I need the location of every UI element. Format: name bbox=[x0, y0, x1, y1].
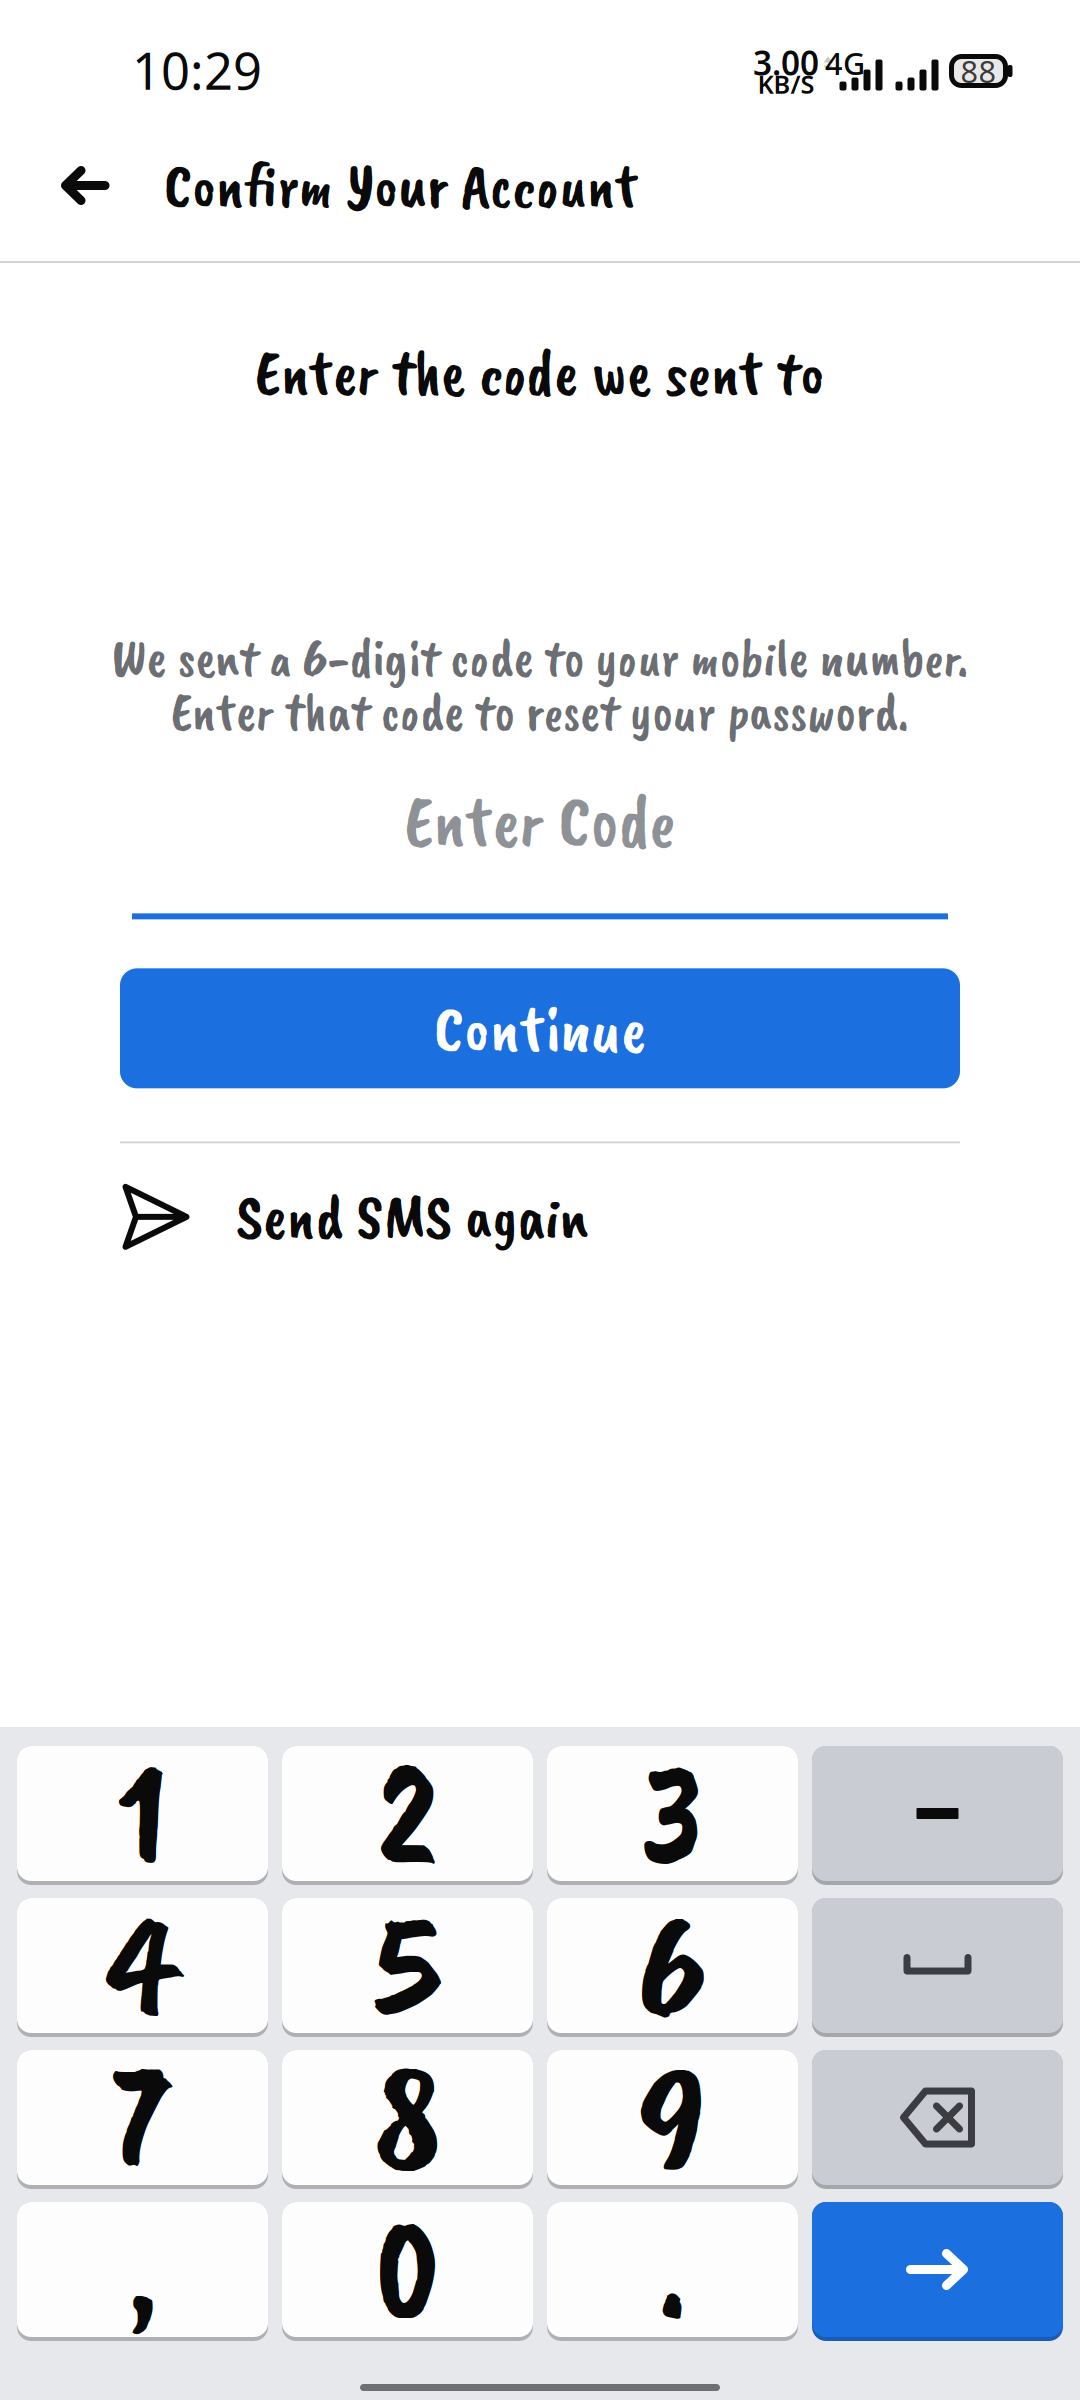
staticText: Enter Code bbox=[404, 776, 675, 866]
button[interactable]: Backspace bbox=[812, 2050, 1063, 2189]
staticText: 4 bbox=[109, 1873, 176, 2058]
staticText: 6 bbox=[638, 1873, 707, 2058]
staticText: 8 bbox=[374, 2025, 441, 2210]
button[interactable]: 5 bbox=[282, 1898, 533, 2037]
button[interactable]: 0 bbox=[282, 2202, 533, 2341]
button[interactable]: Space bbox=[812, 1898, 1063, 2037]
button[interactable]: 4 bbox=[17, 1898, 268, 2037]
button[interactable]: . bbox=[547, 2202, 798, 2341]
staticText: , bbox=[127, 2173, 157, 2358]
button[interactable]: 1 bbox=[17, 1746, 268, 1885]
staticText: 2 bbox=[377, 1721, 438, 1906]
staticText: Continue bbox=[434, 986, 646, 1070]
button[interactable]: 3 bbox=[547, 1746, 798, 1885]
button[interactable]: , bbox=[17, 2202, 268, 2341]
button[interactable]: Submit bbox=[812, 2202, 1063, 2341]
button[interactable]: Continue bbox=[0, 968, 1080, 1088]
button[interactable]: Send SMS again bbox=[0, 1143, 1080, 1270]
staticText: Confirm Your Account bbox=[164, 146, 638, 225]
staticText: We sent a 6-digit code to your mobile nu… bbox=[111, 624, 968, 691]
staticText: 88 bbox=[960, 51, 996, 91]
staticText: 0 bbox=[374, 2177, 440, 2362]
button[interactable]: 2 bbox=[282, 1746, 533, 1885]
button[interactable]: 7 bbox=[17, 2050, 268, 2189]
button[interactable]: 9 bbox=[547, 2050, 798, 2189]
staticText: 9 bbox=[638, 2025, 706, 2210]
staticText: KB/S bbox=[757, 67, 814, 101]
staticText: 3 bbox=[641, 1721, 703, 1906]
staticText: Enter that code to reset your password. bbox=[171, 678, 909, 745]
staticText: 10:29 bbox=[132, 36, 262, 104]
staticText: 7 bbox=[113, 2025, 171, 2210]
button[interactable]: 8 bbox=[282, 2050, 533, 2189]
staticText: 1 bbox=[117, 1721, 168, 1906]
staticText: Enter the code we sent to bbox=[255, 332, 825, 413]
staticText: 3.00 bbox=[753, 40, 819, 85]
staticText: . bbox=[658, 2173, 687, 2358]
button[interactable]: Dash bbox=[812, 1746, 1063, 1885]
button[interactable]: 6 bbox=[547, 1898, 798, 2037]
staticText: 4G bbox=[825, 43, 865, 83]
button[interactable]: Back bbox=[0, 136, 164, 235]
staticText: 5 bbox=[375, 1873, 440, 2058]
staticText: Send SMS again bbox=[236, 1177, 588, 1256]
